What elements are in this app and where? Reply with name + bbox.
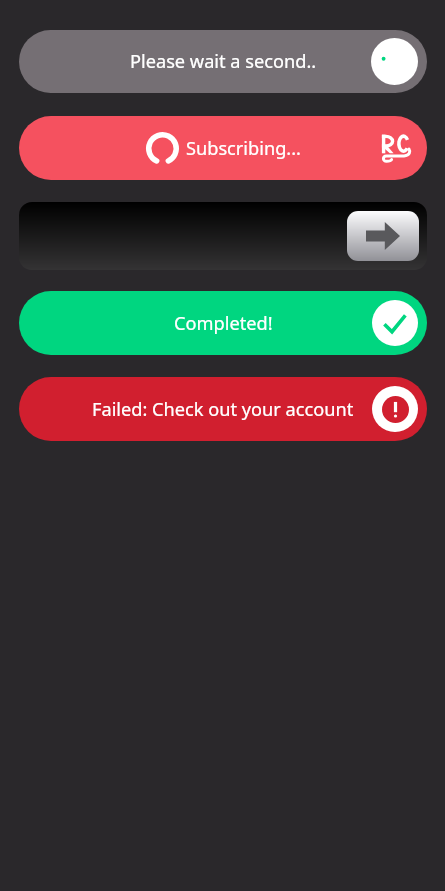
button[interactable]: Completed! xyxy=(19,291,427,355)
button[interactable]: Next xyxy=(347,211,419,261)
staticText: Completed! xyxy=(174,311,273,336)
button[interactable]: Please wait a second.. xyxy=(19,30,427,93)
button[interactable]: Subscribing... xyxy=(19,116,427,180)
button[interactable]: Failed: Check out your account xyxy=(19,377,427,441)
button[interactable]: Next xyxy=(19,202,427,270)
staticText: Subscribing... xyxy=(186,136,301,161)
staticText: Please wait a second.. xyxy=(130,49,317,74)
staticText: Failed: Check out your account xyxy=(92,397,354,422)
